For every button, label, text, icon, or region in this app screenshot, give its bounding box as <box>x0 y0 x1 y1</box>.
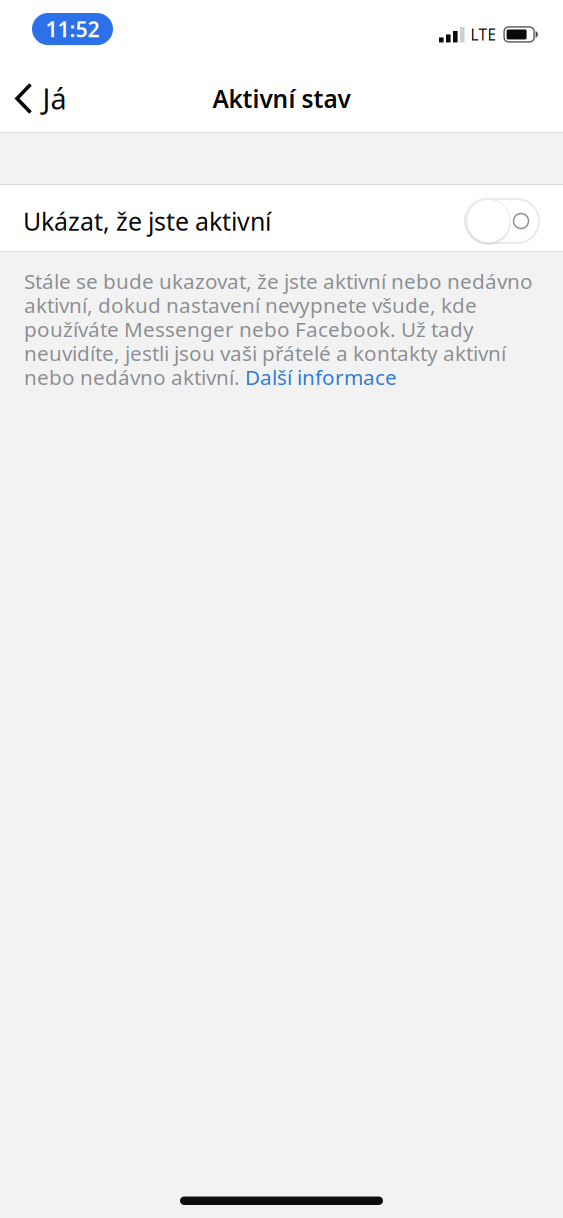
staticText: aktivní, dokud nastavení nevypnete všude… <box>24 291 477 319</box>
staticText: Ukázat, že jste aktivní <box>23 204 271 238</box>
staticText: neuvidíte, jestli jsou vaši přátelé a ko… <box>24 339 506 367</box>
staticText: Další informace <box>245 363 397 391</box>
staticText: nebo nedávno aktivní. <box>24 363 245 391</box>
staticText: používáte Messenger nebo Facebook. Už ta… <box>24 315 474 343</box>
staticText: Aktivní stav <box>212 82 350 115</box>
staticText: Já <box>42 79 66 118</box>
button[interactable]: Další informace <box>245 363 397 391</box>
staticText: Stále se bude ukazovat, že jste aktivní … <box>24 267 533 295</box>
button[interactable]: Já <box>0 62 82 128</box>
staticText: LTE <box>471 24 497 45</box>
staticText: 11:52 <box>45 14 99 44</box>
button[interactable]: Ukázat, že jste aktivní <box>0 185 563 251</box>
